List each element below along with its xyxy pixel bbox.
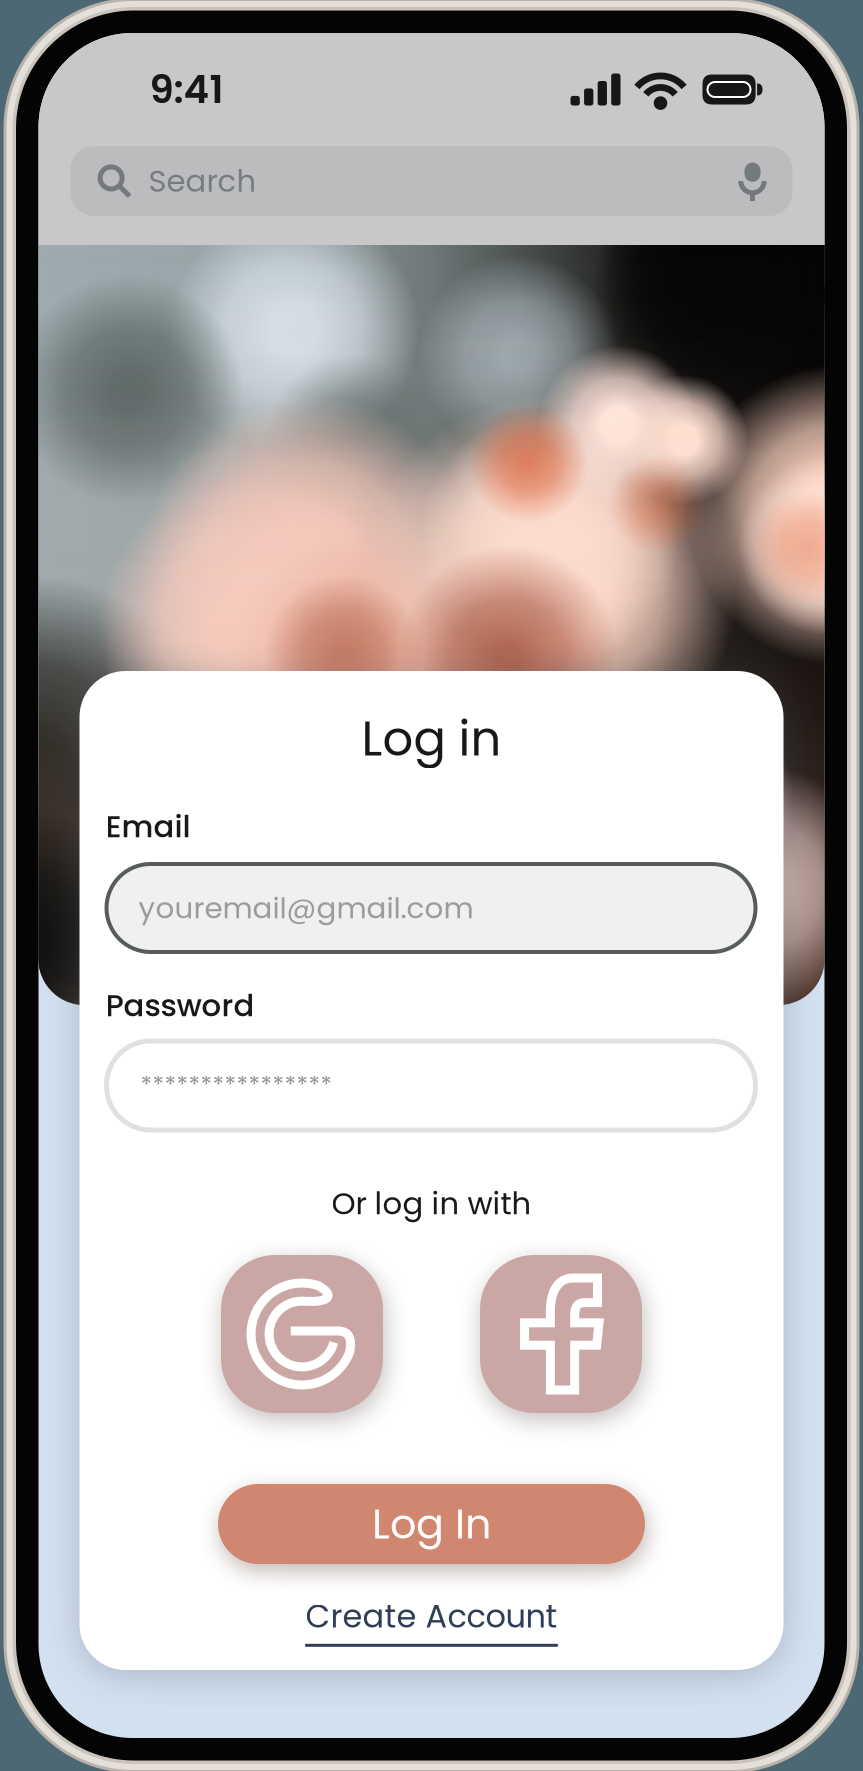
button[interactable]: Log in with Facebook — [480, 1255, 642, 1413]
staticText: Email — [105, 805, 190, 848]
staticText: youremail@gmail.com — [138, 887, 473, 929]
staticText: Search — [148, 159, 256, 202]
button[interactable]: Log in with Google — [221, 1255, 383, 1413]
staticText: **************** — [140, 1069, 332, 1102]
button[interactable]: Log In — [218, 1484, 645, 1564]
staticText: Password — [105, 984, 254, 1027]
button[interactable]: Create Account — [305, 1594, 558, 1647]
staticText: Log in — [361, 705, 501, 772]
staticText: 9:41 — [149, 62, 223, 116]
staticText: Log In — [372, 1495, 491, 1553]
staticText: Create Account — [305, 1594, 557, 1639]
staticText: Or log in with — [331, 1182, 531, 1225]
